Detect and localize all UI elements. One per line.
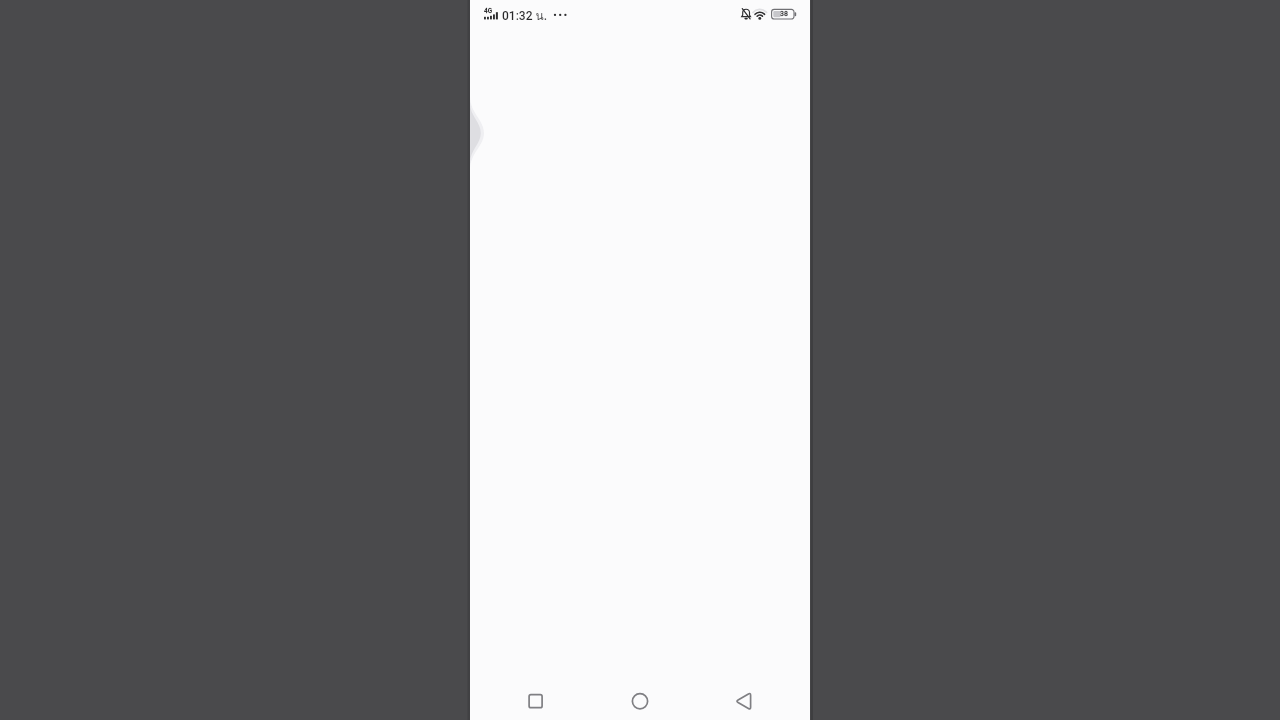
button[interactable] [511,677,559,720]
button[interactable] [462,103,488,163]
button[interactable] [719,677,767,720]
staticText: 4G [484,7,493,15]
staticText: 01:32 น. [502,6,548,25]
button[interactable] [616,677,664,720]
staticText: 38 [780,10,788,18]
